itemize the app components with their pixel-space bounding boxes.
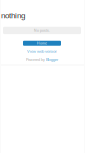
staticText: No posts.	[34, 28, 50, 32]
staticText: Blogger	[46, 58, 58, 62]
button[interactable]: View web version	[27, 49, 57, 54]
button[interactable]: Home	[23, 41, 61, 46]
staticText: View web version	[27, 49, 57, 54]
staticText: Powered by	[26, 58, 45, 62]
button[interactable]: Blogger	[46, 58, 58, 62]
staticText: Home	[37, 41, 47, 45]
staticText: nothing	[1, 11, 25, 20]
